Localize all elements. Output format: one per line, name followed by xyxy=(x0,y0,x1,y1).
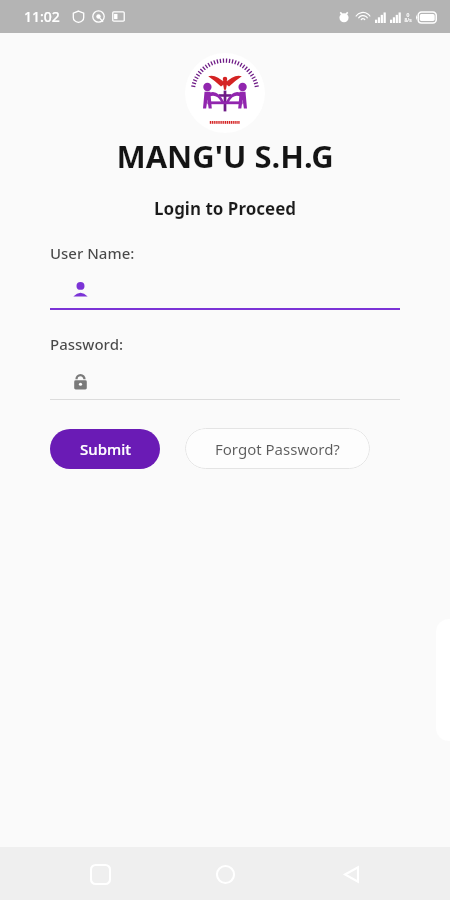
staticText: MANG'U S.H.G xyxy=(116,135,334,177)
button[interactable]: User name input xyxy=(50,272,400,308)
staticText: User Name: xyxy=(50,243,135,263)
staticText: Login to Proceed xyxy=(154,197,297,220)
staticText: Password: xyxy=(50,334,124,354)
button[interactable]: Submit xyxy=(50,429,160,469)
staticText: 0 8/s xyxy=(404,12,412,23)
button[interactable]: Password input xyxy=(50,363,400,399)
staticText: Submit xyxy=(80,439,131,459)
staticText: 11:02 xyxy=(24,7,60,26)
button[interactable]: Forgot Password? xyxy=(185,428,370,469)
button[interactable]: Recent apps xyxy=(74,848,126,900)
staticText: Forgot Password? xyxy=(215,439,340,459)
